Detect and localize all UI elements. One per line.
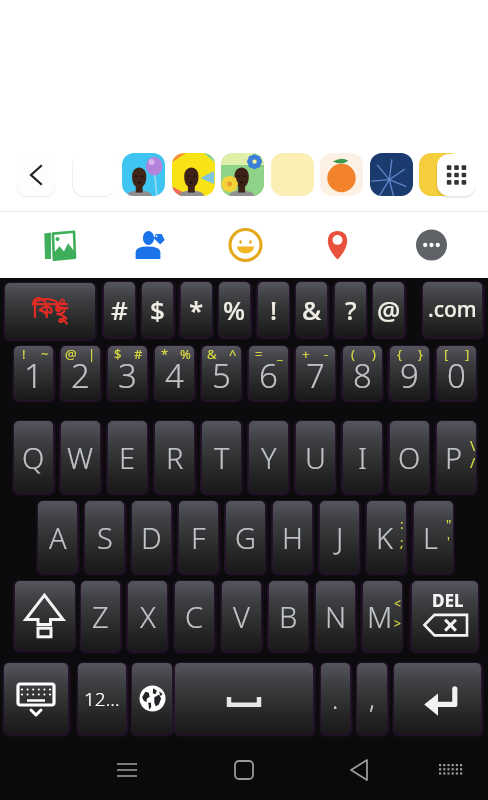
button[interactable]: ? — [335, 282, 366, 337]
button[interactable]: T — [202, 421, 241, 493]
button[interactable]: Sticker — [370, 153, 413, 196]
button[interactable]: Sticker — [419, 153, 462, 196]
staticText: Q — [22, 438, 45, 477]
staticText: N — [325, 597, 347, 636]
button[interactable]: . — [321, 663, 350, 734]
button[interactable]: Enter — [394, 663, 481, 734]
button[interactable]: % — [219, 282, 250, 337]
button[interactable]: More options — [399, 212, 463, 278]
button[interactable]: 2 — [61, 346, 100, 400]
button[interactable]: Location — [305, 212, 369, 278]
button[interactable]: Language — [132, 663, 172, 734]
staticText: . — [332, 681, 339, 716]
button[interactable]: A — [38, 501, 77, 573]
button[interactable]: K — [367, 501, 406, 573]
staticText: ^ — [229, 346, 237, 363]
button[interactable]: V — [222, 581, 261, 651]
staticText: H — [282, 518, 303, 557]
button[interactable]: P — [437, 421, 476, 493]
staticText: % — [223, 292, 246, 327]
button[interactable]: Q — [14, 421, 53, 493]
button[interactable]: Switch keyboard — [421, 740, 481, 800]
button[interactable]: Sticker — [271, 153, 314, 196]
staticText: $ — [114, 346, 122, 363]
button[interactable]: C — [175, 581, 214, 651]
button[interactable]: L — [414, 501, 453, 573]
button[interactable]: I — [343, 421, 382, 493]
button[interactable]: E — [108, 421, 147, 493]
button[interactable]: All stickers — [437, 154, 476, 196]
button[interactable]: 12... — [78, 663, 126, 734]
button[interactable]: R — [155, 421, 194, 493]
staticText: Y — [261, 438, 277, 477]
button[interactable]: D — [132, 501, 171, 573]
button[interactable]: Sticker — [122, 153, 165, 196]
button[interactable]: * — [181, 282, 212, 337]
button[interactable]: J — [320, 501, 359, 573]
staticText: [ — [444, 346, 449, 363]
button[interactable]: W — [61, 421, 100, 493]
staticText: " — [446, 515, 452, 533]
staticText: # — [134, 346, 143, 363]
button[interactable]: Z — [81, 581, 120, 651]
button[interactable]: ! — [258, 282, 289, 337]
staticText: : — [400, 515, 404, 533]
staticText: P — [445, 438, 463, 477]
button[interactable]: Bangla — [5, 283, 95, 339]
button[interactable]: N — [316, 581, 355, 651]
button[interactable]: 9 — [390, 346, 429, 400]
button[interactable]: Menu — [97, 740, 157, 800]
staticText: 0 — [447, 353, 466, 398]
staticText: - — [324, 346, 329, 363]
button[interactable]: & — [296, 282, 327, 337]
button[interactable]: M — [363, 581, 402, 651]
button[interactable]: H — [273, 501, 312, 573]
button[interactable]: Space — [175, 663, 313, 734]
staticText: < — [394, 595, 401, 611]
button[interactable]: Back — [16, 154, 56, 196]
button[interactable]: 7 — [296, 346, 335, 400]
button[interactable]: B — [269, 581, 308, 651]
button[interactable]: Shift — [15, 581, 75, 650]
button[interactable]: G — [226, 501, 265, 573]
staticText: Z — [92, 597, 109, 636]
button[interactable]: 0 — [437, 346, 476, 400]
button[interactable]: U — [296, 421, 335, 493]
staticText: 12... — [84, 686, 120, 712]
button[interactable]: Back — [330, 740, 390, 800]
button[interactable]: Contacts — [116, 212, 180, 278]
staticText: 8 — [353, 353, 372, 398]
staticText: R — [166, 438, 184, 477]
button[interactable]: .com — [423, 282, 482, 337]
button[interactable]: 5 — [202, 346, 241, 400]
button[interactable]: Sticker — [320, 153, 363, 196]
button[interactable]: 4 — [155, 346, 194, 400]
staticText: E — [119, 438, 136, 477]
button[interactable]: X — [128, 581, 167, 651]
button[interactable]: F — [179, 501, 218, 573]
button[interactable]: Sticker — [221, 153, 264, 196]
button[interactable]: # — [104, 282, 135, 337]
button[interactable]: Y — [249, 421, 288, 493]
button[interactable]: , — [357, 663, 387, 734]
button[interactable]: $ — [142, 282, 173, 337]
button[interactable]: O — [390, 421, 429, 493]
button[interactable]: Emoji — [213, 212, 277, 278]
button[interactable]: Home — [214, 740, 274, 800]
button[interactable]: 6 — [249, 346, 288, 400]
staticText: O — [398, 438, 421, 477]
staticText: S — [97, 518, 113, 557]
button[interactable]: Delete — [412, 581, 478, 651]
button[interactable]: Hide keyboard — [4, 663, 68, 734]
staticText: + — [302, 346, 310, 363]
staticText: $ — [150, 292, 165, 327]
button[interactable]: 8 — [343, 346, 382, 400]
button[interactable]: @ — [373, 282, 404, 337]
button[interactable]: 1 — [14, 346, 53, 400]
button[interactable]: Sticker — [172, 153, 215, 196]
staticText: { — [397, 346, 402, 363]
button[interactable]: Photos — [26, 212, 90, 278]
button[interactable]: S — [85, 501, 124, 573]
button[interactable]: 3 — [108, 346, 147, 400]
